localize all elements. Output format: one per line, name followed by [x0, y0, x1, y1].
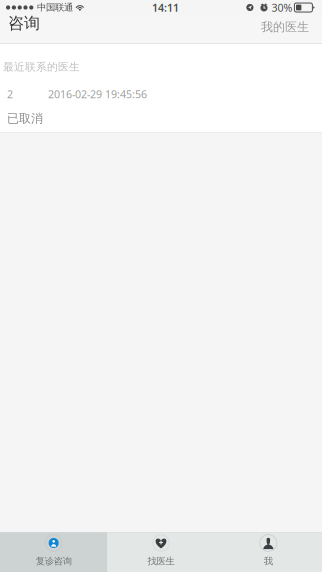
staticText: 2016-02-29 19:45:56: [48, 87, 147, 101]
staticText: 14:11: [152, 0, 179, 15]
staticText: 中国联通: [37, 2, 73, 13]
staticText: 2: [7, 87, 13, 101]
staticText: 复诊咨询: [36, 555, 72, 567]
button[interactable]: 我: [215, 532, 322, 572]
staticText: 咨询: [8, 13, 40, 33]
button[interactable]: 复诊咨询: [0, 532, 107, 572]
button[interactable]: 我的医生: [251, 19, 322, 35]
staticText: 我的医生: [261, 19, 309, 34]
staticText: 最近联系的医生: [3, 60, 80, 73]
staticText: 已取消: [7, 111, 43, 126]
staticText: 找医生: [147, 555, 174, 567]
staticText: 我: [264, 555, 273, 567]
staticText: 30%: [271, 0, 292, 15]
button[interactable]: 咨询: [0, 15, 50, 31]
button[interactable]: 找医生: [107, 532, 215, 572]
button[interactable]: 2: [0, 82, 322, 132]
